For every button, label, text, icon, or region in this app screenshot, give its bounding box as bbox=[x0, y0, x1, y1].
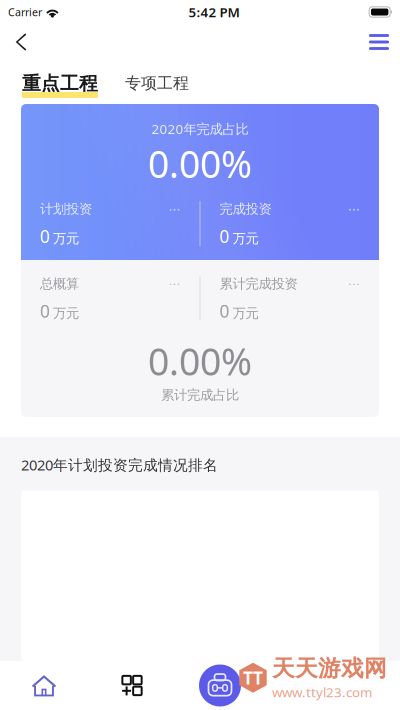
staticText: 总概算 bbox=[40, 276, 79, 292]
staticText: 0 bbox=[219, 299, 229, 322]
staticText: ··· bbox=[168, 199, 180, 219]
staticText: 0.00% bbox=[148, 336, 252, 386]
staticText: 天天游戏网 bbox=[272, 654, 387, 682]
staticText: 0 bbox=[40, 299, 50, 322]
staticText: 累计完成投资 bbox=[219, 276, 297, 292]
staticText: TT bbox=[243, 666, 263, 689]
staticText: 重点工程 bbox=[22, 72, 98, 95]
staticText: Carrier bbox=[8, 5, 42, 19]
staticText: 万元 bbox=[232, 305, 258, 321]
button[interactable]: Tools bbox=[176, 661, 264, 710]
button[interactable]: Apps bbox=[88, 661, 176, 710]
staticText: 5:42 PM bbox=[188, 3, 239, 21]
staticText: www.ttyl23.com bbox=[272, 683, 372, 701]
staticText: 0.00% bbox=[148, 139, 252, 188]
button[interactable]: Back bbox=[4, 25, 38, 59]
staticText: 万元 bbox=[232, 230, 258, 247]
staticText: 专项工程 bbox=[125, 73, 189, 93]
staticText: ··· bbox=[168, 274, 180, 293]
button[interactable]: 重点工程 bbox=[22, 72, 98, 98]
staticText: 累计完成占比 bbox=[161, 387, 239, 403]
staticText: 计划投资 bbox=[40, 201, 92, 217]
staticText: 万元 bbox=[53, 305, 79, 321]
staticText: ··· bbox=[348, 199, 360, 219]
staticText: 完成投资 bbox=[219, 201, 271, 217]
button[interactable]: Menu bbox=[362, 25, 396, 59]
staticText: 0 bbox=[219, 225, 229, 248]
staticText: 万元 bbox=[53, 230, 79, 247]
button[interactable]: 专项工程 bbox=[98, 73, 189, 98]
staticText: 2020年计划投资完成情况排名 bbox=[21, 455, 218, 474]
staticText: ··· bbox=[348, 274, 360, 293]
button[interactable]: Home bbox=[0, 661, 88, 710]
staticText: 0 bbox=[40, 225, 50, 248]
staticText: 2020年完成占比 bbox=[151, 120, 248, 138]
